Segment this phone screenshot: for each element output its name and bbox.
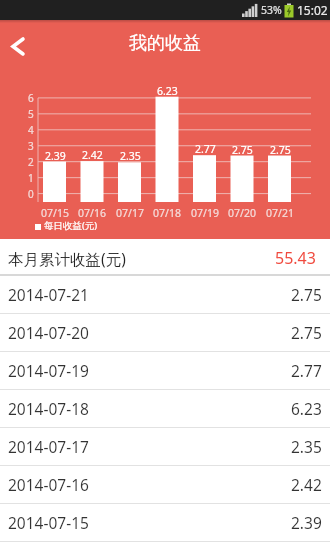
staticText: 2 xyxy=(28,155,34,169)
staticText: 07/19 xyxy=(191,206,219,220)
staticText: 2014-07-18 xyxy=(8,398,89,419)
button[interactable]: 2014-07-20 xyxy=(0,314,330,352)
staticText: 2014-07-16 xyxy=(8,474,89,495)
staticText: 5 xyxy=(28,107,34,121)
staticText: 6.23 xyxy=(157,84,178,98)
staticText: 2014-07-19 xyxy=(8,360,89,381)
staticText: 2.77 xyxy=(195,142,216,156)
staticText: 2014-07-15 xyxy=(8,512,89,533)
staticText: 2014-07-21 xyxy=(8,284,89,305)
staticText: 2.39 xyxy=(291,512,322,533)
staticText: 3 xyxy=(28,139,34,153)
staticText: 07/20 xyxy=(228,206,256,220)
staticText: 2.42 xyxy=(291,474,322,495)
staticText: 4 xyxy=(28,123,34,137)
staticText: 6 xyxy=(28,91,34,105)
staticText: 2.75 xyxy=(291,322,322,343)
staticText: 2.39 xyxy=(45,149,66,163)
button[interactable]: 2014-07-16 xyxy=(0,466,330,504)
button[interactable]: 2014-07-21 xyxy=(0,276,330,314)
staticText: 53% xyxy=(261,3,282,17)
staticText: 07/17 xyxy=(116,206,144,220)
staticText: 2.42 xyxy=(82,148,103,162)
staticText: 1 xyxy=(28,171,34,185)
staticText: 2.35 xyxy=(120,149,141,163)
staticText: 07/21 xyxy=(266,206,294,220)
staticText: 07/18 xyxy=(153,206,181,220)
staticText: 07/16 xyxy=(78,206,106,220)
staticText: 2.75 xyxy=(291,284,322,305)
staticText: 55.43 xyxy=(275,247,316,269)
staticText: 2.75 xyxy=(270,143,291,157)
staticText: 本月累计收益(元) xyxy=(8,248,126,269)
staticText: 2.77 xyxy=(291,360,322,381)
staticText: 2014-07-17 xyxy=(8,436,89,457)
staticText: 0 xyxy=(28,187,34,201)
button[interactable]: 2014-07-19 xyxy=(0,352,330,390)
button[interactable]: 2014-07-15 xyxy=(0,504,330,542)
staticText: 我的收益 xyxy=(129,32,201,55)
staticText: 15:02 xyxy=(297,2,328,18)
staticText: 6.23 xyxy=(291,398,322,419)
button[interactable] xyxy=(0,28,36,64)
button[interactable]: 2014-07-18 xyxy=(0,390,330,428)
staticText: 2.75 xyxy=(232,143,253,157)
staticText: 2.35 xyxy=(291,436,322,457)
button[interactable]: 2014-07-17 xyxy=(0,428,330,466)
staticText: 07/15 xyxy=(41,206,69,220)
staticText: 2014-07-20 xyxy=(8,322,89,343)
staticText: 每日收益(元) xyxy=(44,219,98,232)
